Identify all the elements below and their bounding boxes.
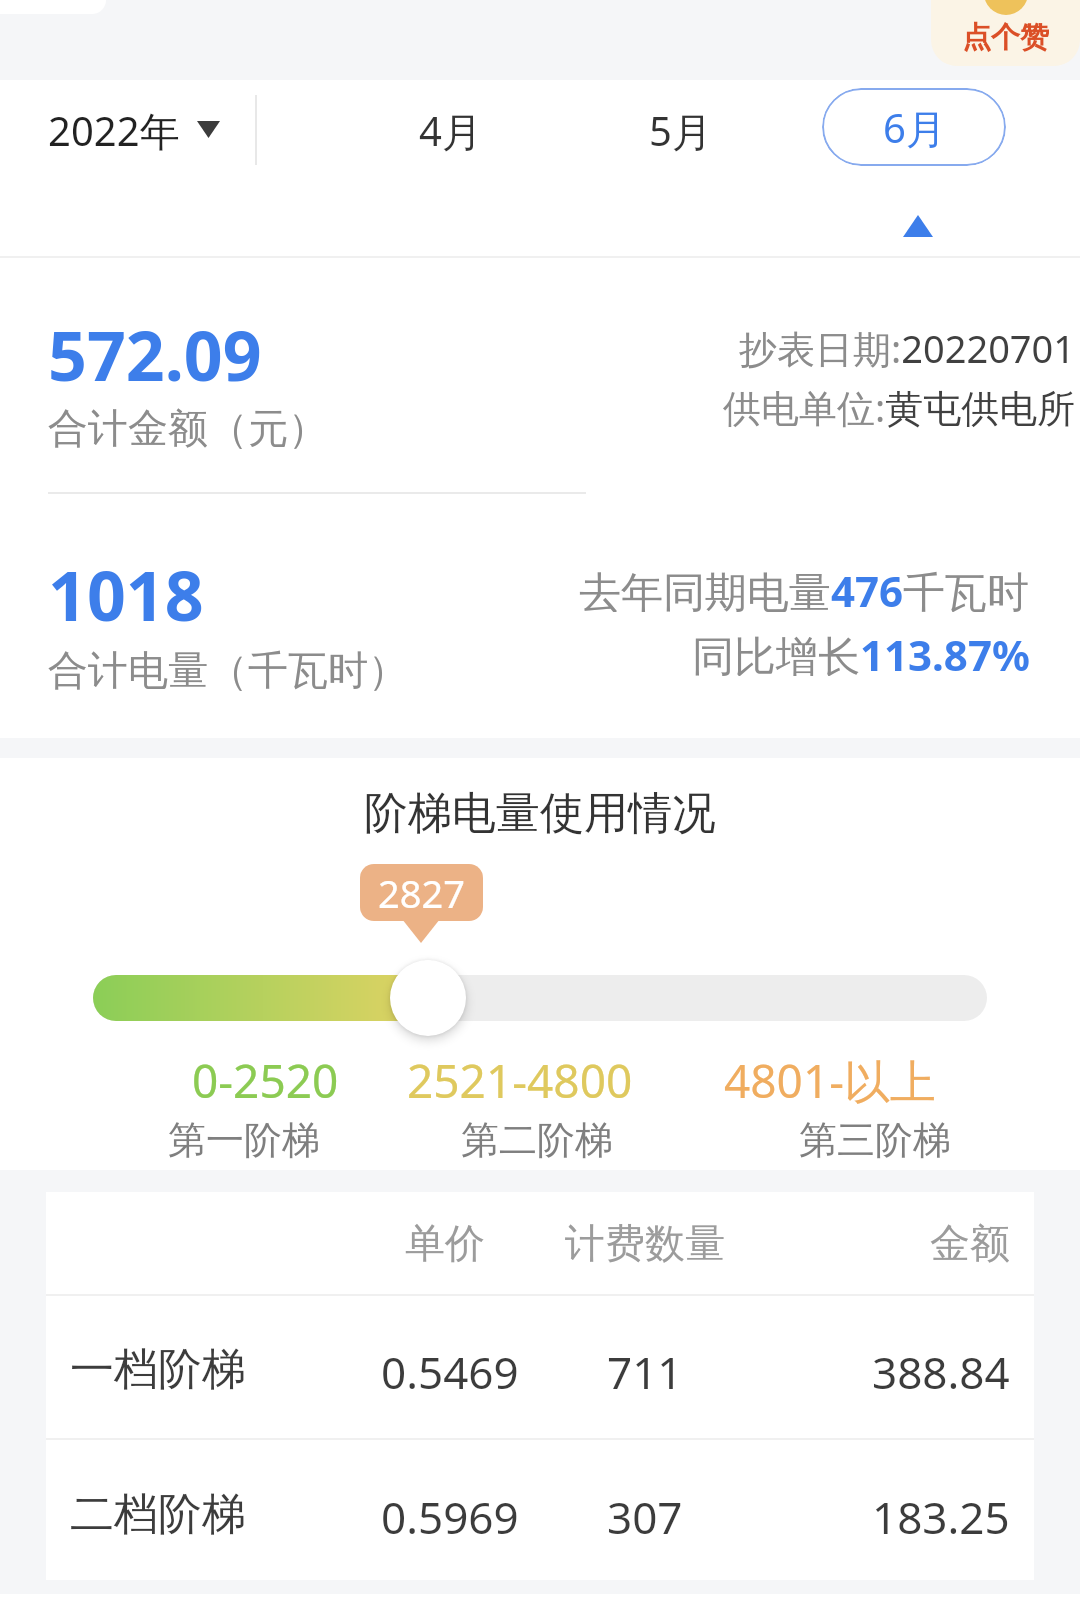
staticText: 4月 <box>419 103 482 158</box>
staticText: 2022年 <box>48 103 180 158</box>
staticText: 183.25 <box>872 1487 1010 1537</box>
staticText: 第二阶梯 <box>461 1116 613 1164</box>
button[interactable]: 5月 <box>615 100 745 160</box>
staticText: 6月 <box>883 100 946 155</box>
button[interactable]: 点个赞 <box>931 0 1080 66</box>
staticText: 0.5969 <box>381 1487 519 1537</box>
button[interactable]: 二档阶梯 <box>70 1487 290 1537</box>
staticText: 去年同期电量476千瓦时 <box>579 562 1030 612</box>
staticText: 711 <box>607 1342 683 1392</box>
staticText: 二档阶梯 <box>70 1487 246 1537</box>
staticText: 合计金额（元） <box>48 403 328 453</box>
staticText: 抄表日期:20220701 <box>739 322 1076 370</box>
staticText: 2827 <box>378 867 465 919</box>
staticText: 2521-4800 <box>407 1049 633 1112</box>
staticText: 合计电量（千瓦时） <box>48 645 408 695</box>
button[interactable]: 6月 <box>822 88 1006 166</box>
staticText: 同比增长113.87% <box>692 626 1030 676</box>
staticText: 一档阶梯 <box>70 1342 246 1392</box>
staticText: 0.5469 <box>381 1342 519 1392</box>
staticText: 第一阶梯 <box>168 1116 320 1164</box>
staticText: 0-2520 <box>192 1049 339 1112</box>
button[interactable]: 4月 <box>385 100 515 160</box>
staticText: 单价 <box>405 1218 485 1268</box>
button[interactable]: 一档阶梯 <box>70 1342 290 1392</box>
staticText: 点个赞 <box>962 19 1049 53</box>
staticText: 572.09 <box>48 308 262 400</box>
staticText: 1018 <box>48 548 204 640</box>
staticText: 金额 <box>930 1218 1010 1268</box>
staticText: 388.84 <box>872 1342 1010 1392</box>
button[interactable]: 2022年 <box>48 100 193 160</box>
staticText: 阶梯电量使用情况 <box>364 786 716 841</box>
staticText: 307 <box>607 1487 683 1537</box>
staticText: 计费数量 <box>565 1218 725 1268</box>
staticText: 5月 <box>649 103 712 158</box>
staticText: 4801-以上 <box>724 1049 937 1112</box>
staticText: 第三阶梯 <box>799 1116 951 1164</box>
staticText: 供电单位:黄屯供电所 <box>723 381 1076 429</box>
